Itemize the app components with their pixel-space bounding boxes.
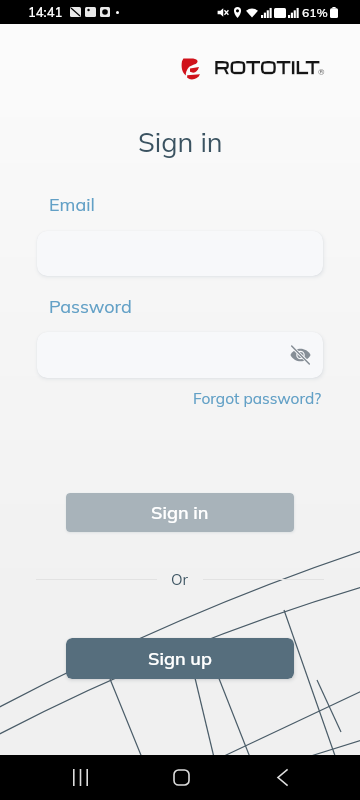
button[interactable]: Home: [157, 755, 205, 800]
staticText: Sign in: [151, 501, 209, 524]
staticText: ROTOTILT: [214, 57, 320, 78]
button[interactable]: Recents: [56, 755, 104, 800]
staticText: Password: [49, 295, 132, 318]
staticText: ®: [318, 67, 325, 77]
button[interactable]: Forgot password?: [193, 388, 322, 407]
staticText: Email: [49, 193, 95, 216]
button[interactable]: Sign up: [66, 638, 294, 679]
button[interactable]: Show password: [285, 340, 315, 370]
staticText: Or: [171, 570, 189, 589]
staticText: 14:41: [28, 4, 63, 20]
button[interactable]: Password field: [37, 332, 323, 378]
button[interactable]: Sign in: [66, 493, 294, 532]
button[interactable]: Back: [258, 755, 306, 800]
staticText: Sign up: [148, 647, 212, 670]
staticText: Sign in: [138, 125, 223, 159]
staticText: 61%: [302, 5, 328, 20]
